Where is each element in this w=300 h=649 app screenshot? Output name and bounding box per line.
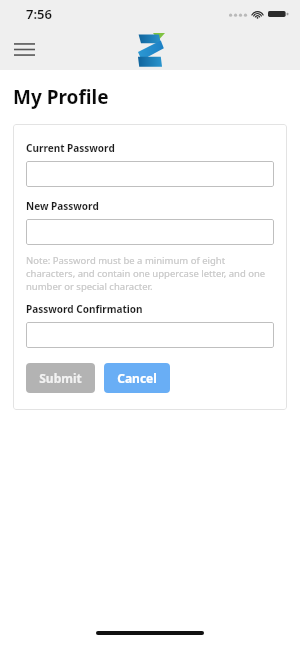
button[interactable]: Open navigation menu: [8, 33, 40, 65]
staticText: Note: Password must be a minimum of eigh…: [26, 254, 274, 293]
button[interactable]: App logo: [133, 32, 167, 68]
button[interactable]: Current Password field: [26, 161, 274, 187]
staticText: My Profile: [13, 84, 109, 110]
staticText: Current Password: [26, 141, 115, 155]
staticText: Submit: [39, 370, 82, 386]
button[interactable]: Password Confirmation field: [26, 322, 274, 348]
button[interactable]: Submit: [26, 363, 95, 393]
button[interactable]: New Password field: [26, 219, 274, 245]
staticText: 7:56: [26, 5, 52, 23]
staticText: New Password: [26, 199, 99, 213]
button[interactable]: Cancel: [104, 363, 170, 393]
staticText: Password Confirmation: [26, 302, 143, 316]
staticText: Cancel: [117, 370, 157, 386]
